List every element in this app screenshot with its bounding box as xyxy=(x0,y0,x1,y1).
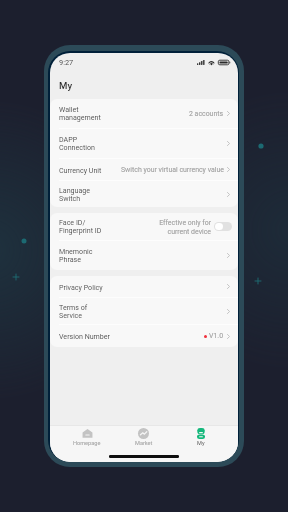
staticText: Switch your virtual currency value xyxy=(121,166,224,174)
staticText: Face ID/ Fingerprint ID xyxy=(59,218,102,235)
staticText: My xyxy=(59,80,73,91)
button[interactable]: Face ID/ Fingerprint ID xyxy=(50,213,238,240)
staticText: Version Number xyxy=(59,332,110,340)
button[interactable]: My xyxy=(172,428,229,447)
button[interactable]: Market xyxy=(115,428,172,447)
staticText: Terms of Service xyxy=(59,303,88,320)
staticText: Effective only for current device xyxy=(159,219,211,235)
staticText: Language Switch xyxy=(59,186,91,203)
staticText: Market xyxy=(135,440,153,447)
button[interactable]: Mnemonic Phrase xyxy=(50,241,238,270)
staticText: Privacy Policy xyxy=(59,283,103,291)
staticText: Mnemonic Phrase xyxy=(59,247,93,264)
staticText: Currency Unit xyxy=(59,166,102,174)
other: Toggle Face ID / Fingerprint ID xyxy=(214,222,232,231)
button[interactable]: Privacy Policy xyxy=(50,276,238,297)
button[interactable]: Language Switch xyxy=(50,181,238,207)
staticText: Wallet management xyxy=(59,105,101,122)
staticText: 9:27 xyxy=(59,58,74,67)
staticText: My xyxy=(197,440,205,447)
staticText: Homepage xyxy=(73,440,101,447)
button[interactable]: DAPP Connection xyxy=(50,129,238,158)
button[interactable]: Homepage xyxy=(59,428,115,447)
button[interactable]: Currency Unit xyxy=(50,159,238,180)
staticText: DAPP Connection xyxy=(59,135,95,152)
staticText: 2 accounts xyxy=(189,110,224,118)
button[interactable]: Terms of Service xyxy=(50,298,238,324)
button[interactable]: Version Number xyxy=(50,325,238,347)
staticText: V1.0 xyxy=(209,332,224,340)
button[interactable]: Wallet management xyxy=(50,99,238,128)
